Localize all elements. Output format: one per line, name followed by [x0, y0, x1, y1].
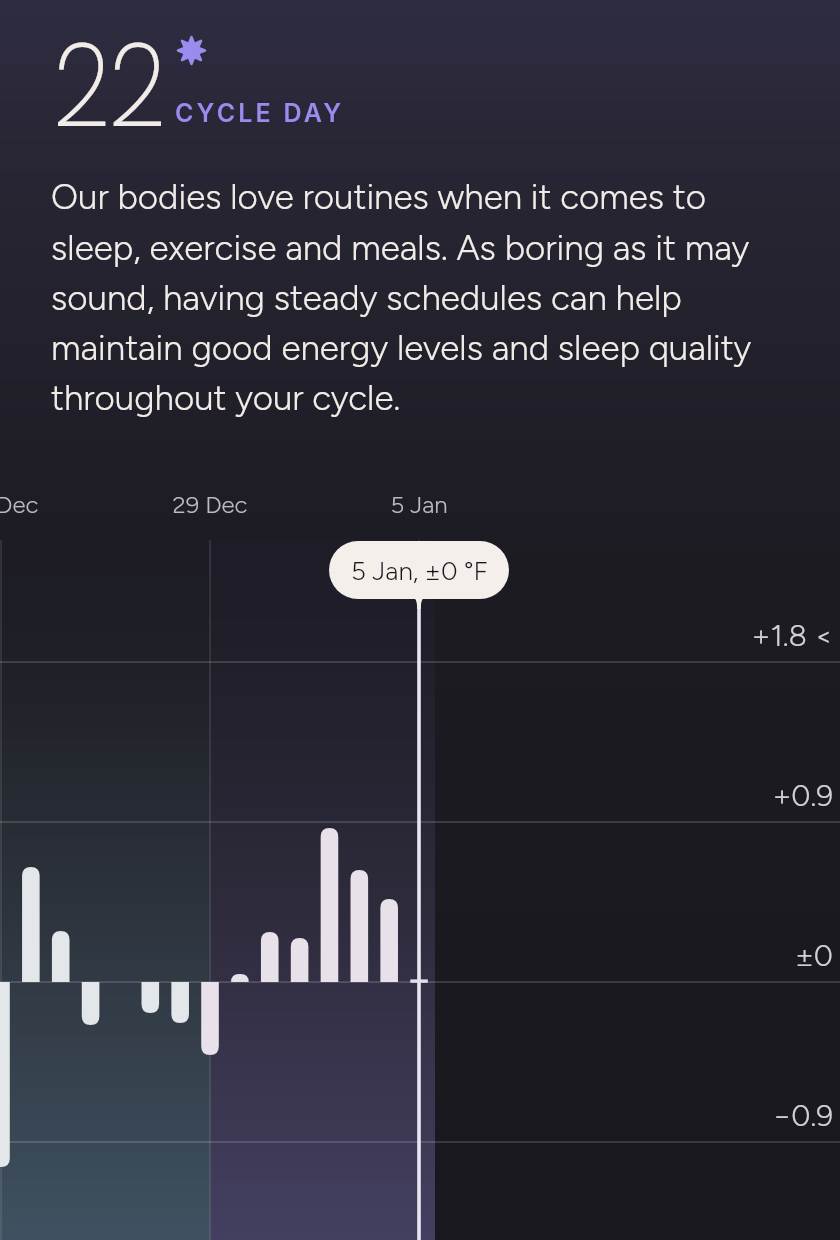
staticText: Our bodies love routines when it comes t… — [51, 176, 840, 419]
other: Cycle insight — [177, 36, 206, 65]
staticText: +0.9 — [500, 777, 833, 813]
staticText: 22 — [53, 4, 165, 166]
staticText: −0.9 — [500, 1097, 833, 1133]
staticText: 5 Jan — [359, 490, 479, 519]
button[interactable]: 5 Jan, ±0 °F — [329, 541, 509, 599]
staticText: ±0 — [500, 937, 833, 973]
staticText: 29 Dec — [150, 490, 270, 519]
staticText: 5 Jan, ±0 °F — [351, 555, 488, 586]
staticText: 22 Dec — [0, 490, 61, 519]
staticText: CYCLE DAY — [175, 98, 345, 128]
staticText: +1.8 < — [500, 617, 833, 653]
